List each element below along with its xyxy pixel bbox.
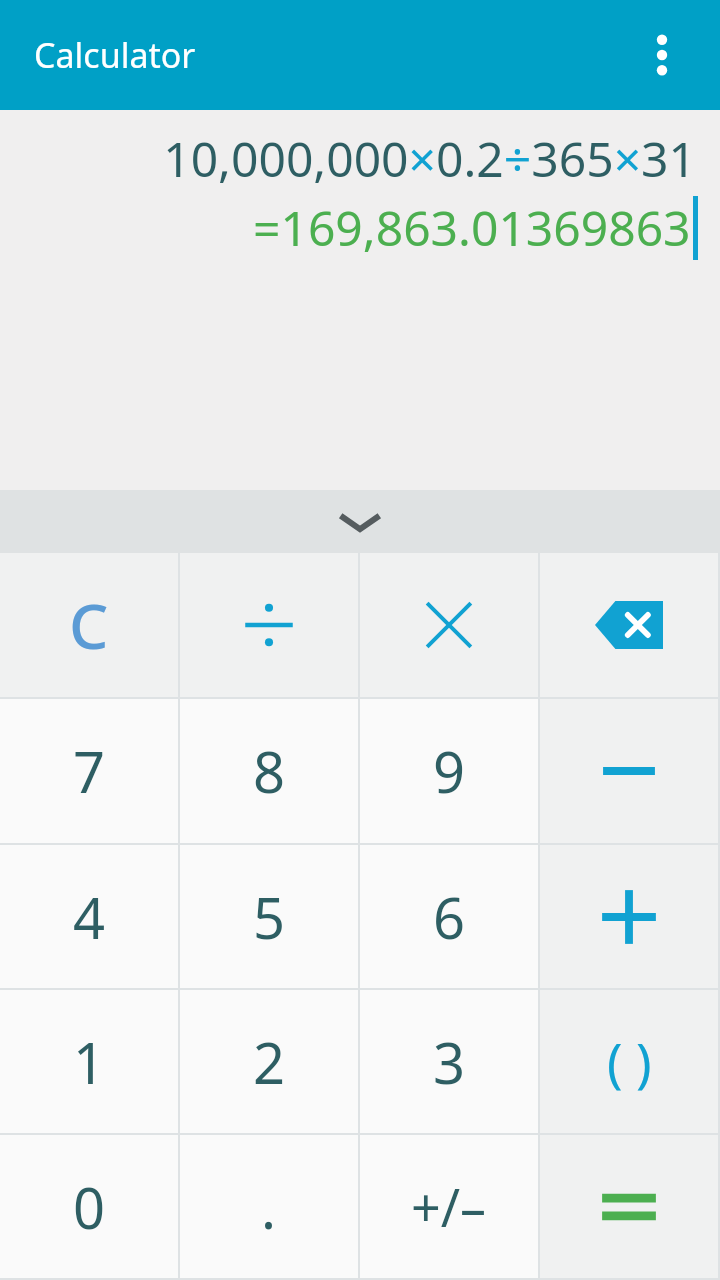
button[interactable]: Plus bbox=[540, 845, 718, 988]
button[interactable]: 8 bbox=[180, 699, 358, 843]
button[interactable]: 9 bbox=[360, 699, 538, 843]
button[interactable]: Multiply bbox=[360, 553, 538, 697]
button[interactable]: 6 bbox=[360, 845, 538, 988]
staticText: 5 bbox=[253, 879, 286, 955]
button[interactable]: Collapse keypad bbox=[0, 490, 720, 553]
button[interactable]: 2 bbox=[180, 990, 358, 1133]
staticText: 10,000,000×0.2÷365×31 bbox=[0, 126, 696, 191]
button[interactable]: Divide bbox=[180, 553, 358, 697]
staticText: 4 bbox=[73, 879, 106, 955]
button[interactable]: 3 bbox=[360, 990, 538, 1133]
staticText: . bbox=[261, 1169, 277, 1245]
staticText: 6 bbox=[433, 879, 466, 955]
staticText: 3 bbox=[433, 1024, 466, 1100]
button[interactable]: Equals bbox=[540, 1135, 718, 1278]
button[interactable]: 7 bbox=[0, 699, 178, 843]
staticText: +/– bbox=[411, 1171, 487, 1242]
button[interactable]: Backspace bbox=[540, 553, 718, 697]
staticText: =169,863.01369863 bbox=[253, 195, 691, 260]
button[interactable]: More options bbox=[634, 27, 690, 83]
staticText: 9 bbox=[433, 733, 466, 809]
staticText: Calculator bbox=[34, 32, 196, 78]
staticText: 1 bbox=[73, 1024, 106, 1100]
button[interactable]: 4 bbox=[0, 845, 178, 988]
button[interactable]: 1 bbox=[0, 990, 178, 1133]
button[interactable]: Minus bbox=[540, 699, 718, 843]
button[interactable]: Clear bbox=[0, 553, 178, 697]
button[interactable]: 5 bbox=[180, 845, 358, 988]
staticText: 7 bbox=[73, 733, 106, 809]
button[interactable]: Parentheses bbox=[540, 990, 718, 1133]
button[interactable]: 0 bbox=[0, 1135, 178, 1278]
staticText: 0 bbox=[73, 1169, 106, 1245]
staticText: 2 bbox=[253, 1024, 286, 1100]
staticText: ( ) bbox=[607, 1026, 652, 1097]
button[interactable]: Plus minus bbox=[360, 1135, 538, 1278]
button[interactable]: . bbox=[180, 1135, 358, 1278]
staticText: C bbox=[69, 583, 109, 667]
staticText: 8 bbox=[253, 733, 286, 809]
